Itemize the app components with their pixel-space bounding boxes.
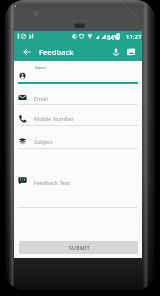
- button[interactable]: SUBMIT: [19, 241, 138, 254]
- staticText: Feedback Text: [34, 179, 70, 186]
- staticText: Mobile Number: [34, 115, 74, 122]
- staticText: SUBMIT: [69, 245, 91, 252]
- staticText: 11:27: [126, 33, 142, 41]
- staticText: Name: [35, 65, 46, 70]
- button[interactable]: [14, 82, 142, 106]
- button[interactable]: Attach image: [122, 43, 139, 60]
- staticText: Feedback: [39, 47, 74, 57]
- button[interactable]: [14, 125, 142, 149]
- staticText: 64%: [107, 33, 120, 41]
- button[interactable]: Back: [18, 43, 35, 60]
- staticText: Subject: [34, 138, 53, 145]
- staticText: Email: [34, 95, 48, 102]
- button[interactable]: [14, 61, 142, 83]
- button[interactable]: [14, 148, 142, 209]
- button[interactable]: [14, 104, 142, 126]
- button[interactable]: Voice input: [107, 43, 124, 60]
